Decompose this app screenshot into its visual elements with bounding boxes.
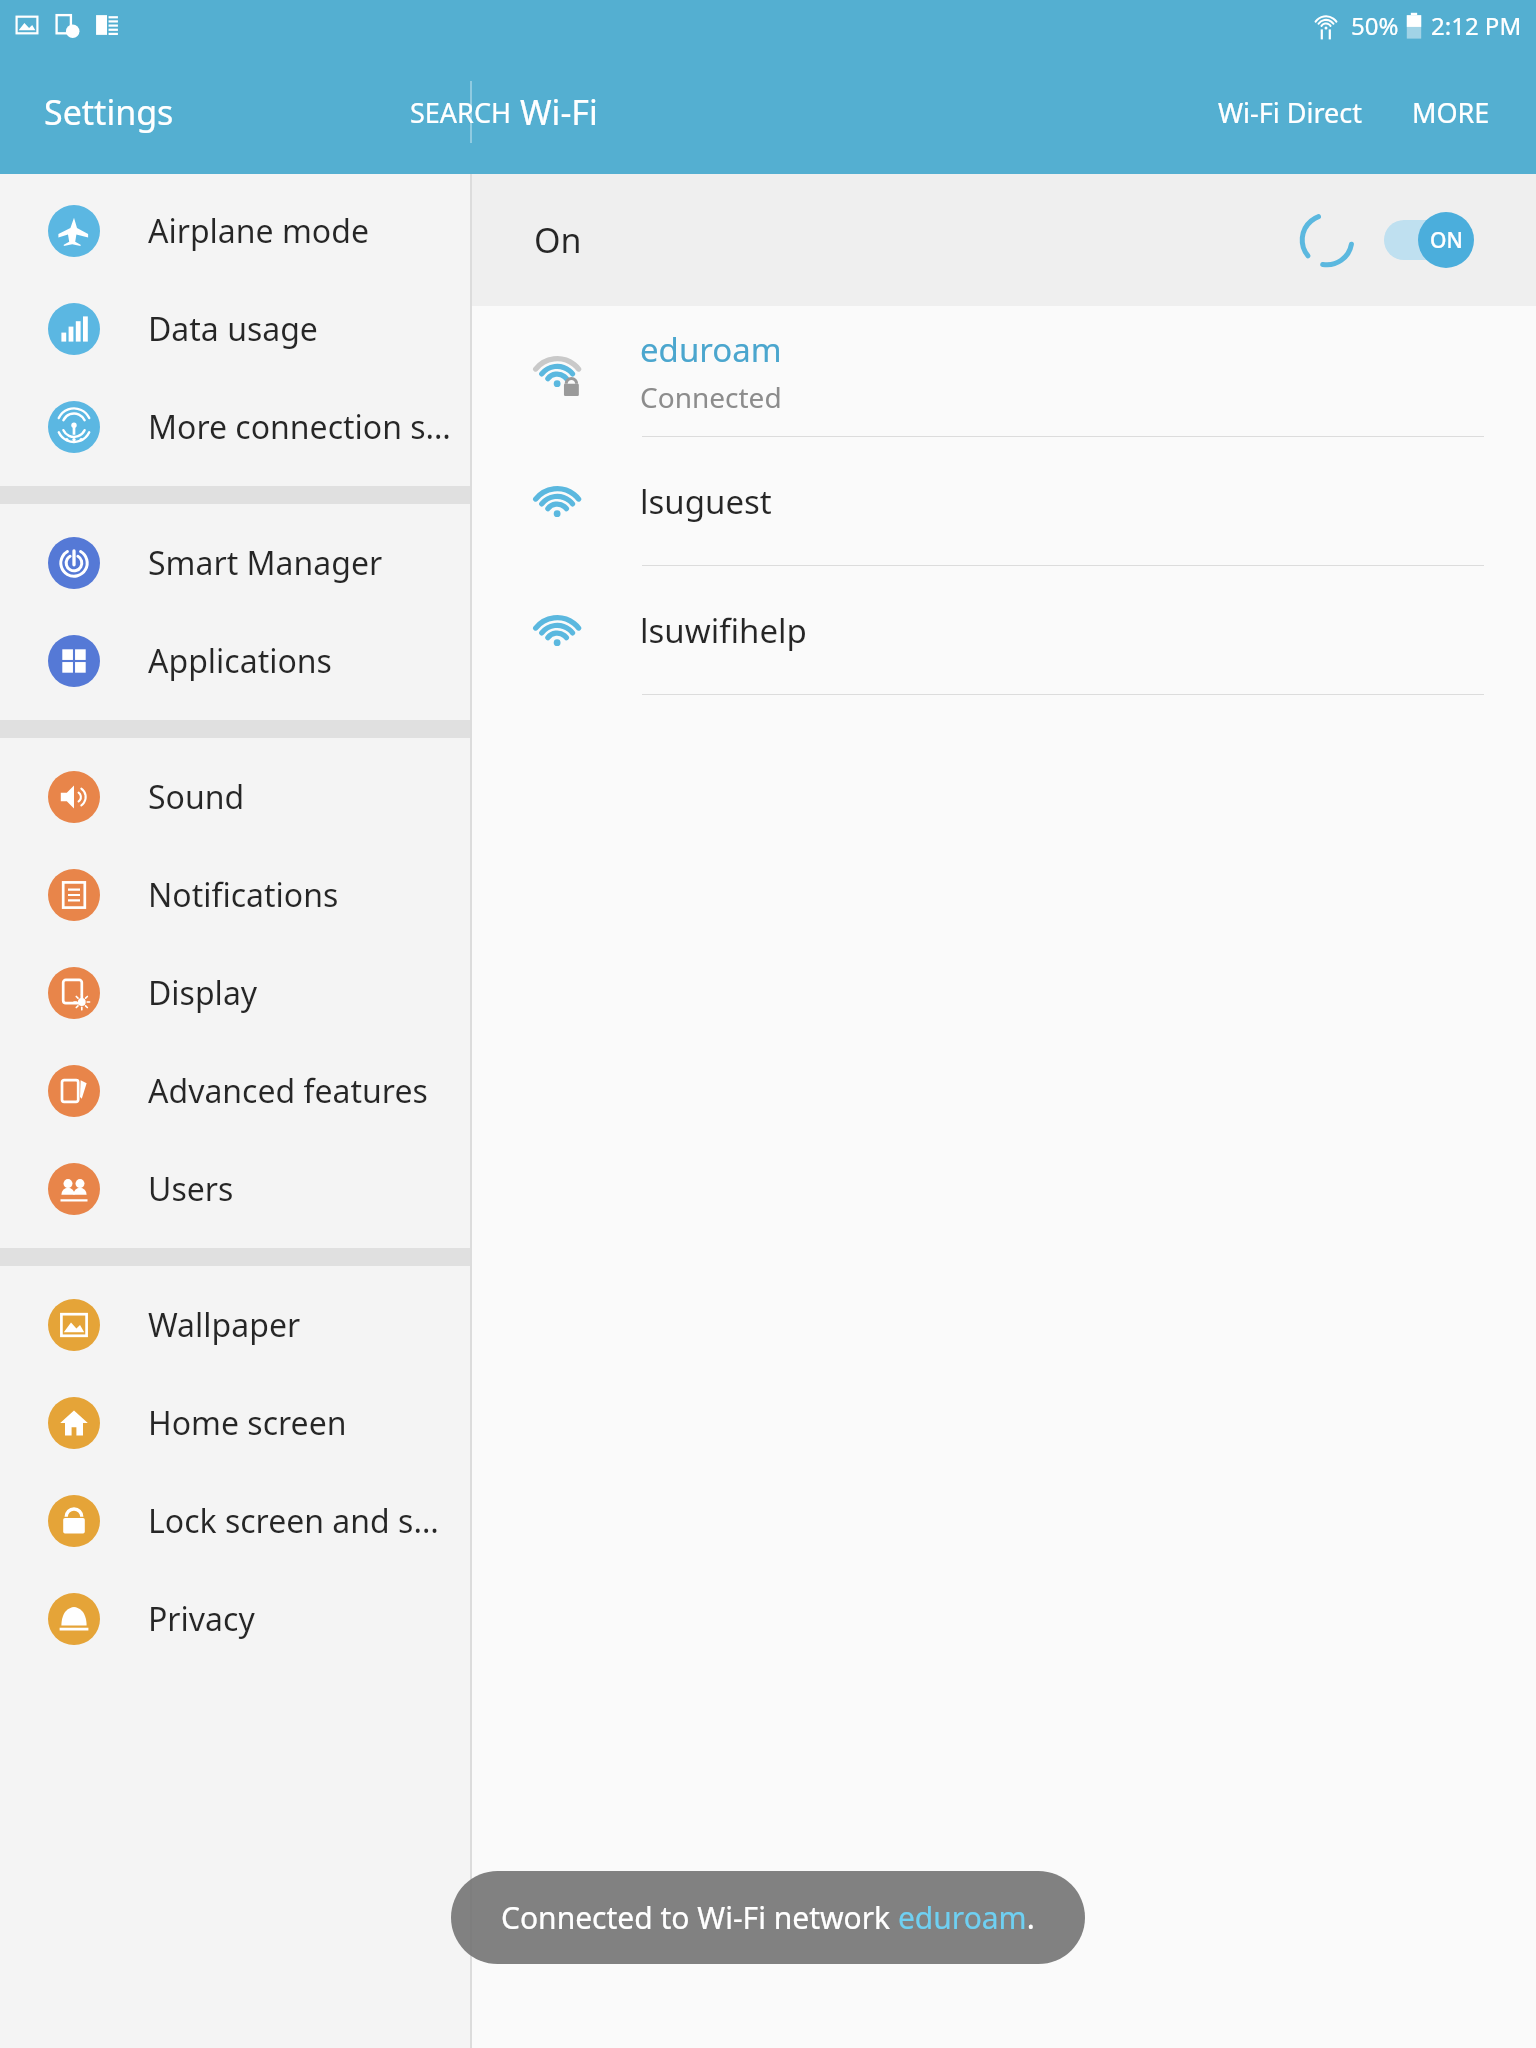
staticText: Smart Manager [148, 541, 383, 585]
button[interactable]: Applications [0, 612, 470, 710]
staticText: Privacy [148, 1597, 255, 1641]
button[interactable]: Advanced features [0, 1042, 470, 1140]
staticText: Wallpaper [148, 1303, 301, 1347]
button[interactable]: SEARCH [400, 82, 521, 143]
staticText: Users [148, 1167, 234, 1211]
button[interactable]: Wi-Fi on [1382, 212, 1474, 268]
staticText: Lock screen and security [148, 1499, 454, 1543]
staticText: eduroam [640, 327, 782, 372]
staticText: lsuwifihelp [640, 608, 807, 653]
button[interactable]: Data usage [0, 280, 470, 378]
staticText: lsuguest [640, 479, 772, 524]
button[interactable]: MORE [1402, 82, 1500, 143]
staticText: SEARCH [410, 94, 511, 131]
staticText: Settings [44, 89, 174, 135]
button[interactable]: Airplane mode [0, 182, 470, 280]
button[interactable]: Notifications [0, 846, 470, 944]
staticText: Display [148, 971, 258, 1015]
staticText: More connection settin… [148, 405, 454, 449]
button[interactable]: Wi-Fi Direct [1208, 82, 1372, 143]
staticText: On [534, 217, 582, 263]
button[interactable]: Settings [44, 89, 174, 135]
button[interactable]: Display [0, 944, 470, 1042]
button[interactable]: Sound [0, 748, 470, 846]
staticText: Wi-Fi Direct [1218, 94, 1362, 131]
button[interactable]: Privacy [0, 1570, 470, 1668]
button[interactable]: On [472, 174, 1536, 306]
staticText: Home screen [148, 1401, 347, 1445]
other: Scanning [1296, 209, 1358, 271]
staticText: ON [1430, 226, 1463, 255]
staticText: MORE [1412, 94, 1490, 131]
button[interactable]: Home screen [0, 1374, 470, 1472]
button[interactable]: Smart Manager [0, 514, 470, 612]
staticText: Connected [640, 378, 782, 416]
button[interactable]: lsuguest [472, 437, 1536, 566]
staticText: Wi-Fi [520, 89, 598, 135]
staticText: Data usage [148, 307, 318, 351]
staticText: Connected to Wi-Fi network eduroam. [501, 1897, 1035, 1938]
button[interactable]: Wallpaper [0, 1276, 470, 1374]
staticText: Applications [148, 639, 332, 683]
staticText: Airplane mode [148, 209, 369, 253]
staticText: Notifications [148, 873, 339, 917]
button[interactable]: Users [0, 1140, 470, 1238]
staticText: 2:12 PM [1431, 9, 1522, 42]
staticText: Sound [148, 775, 245, 819]
button[interactable]: lsuwifihelp [472, 566, 1536, 695]
staticText: Advanced features [148, 1069, 428, 1113]
staticText: 50% [1351, 9, 1399, 42]
button[interactable]: eduroam [472, 306, 1536, 437]
button[interactable]: More connection settin… [0, 378, 470, 476]
button[interactable]: Lock screen and security [0, 1472, 470, 1570]
